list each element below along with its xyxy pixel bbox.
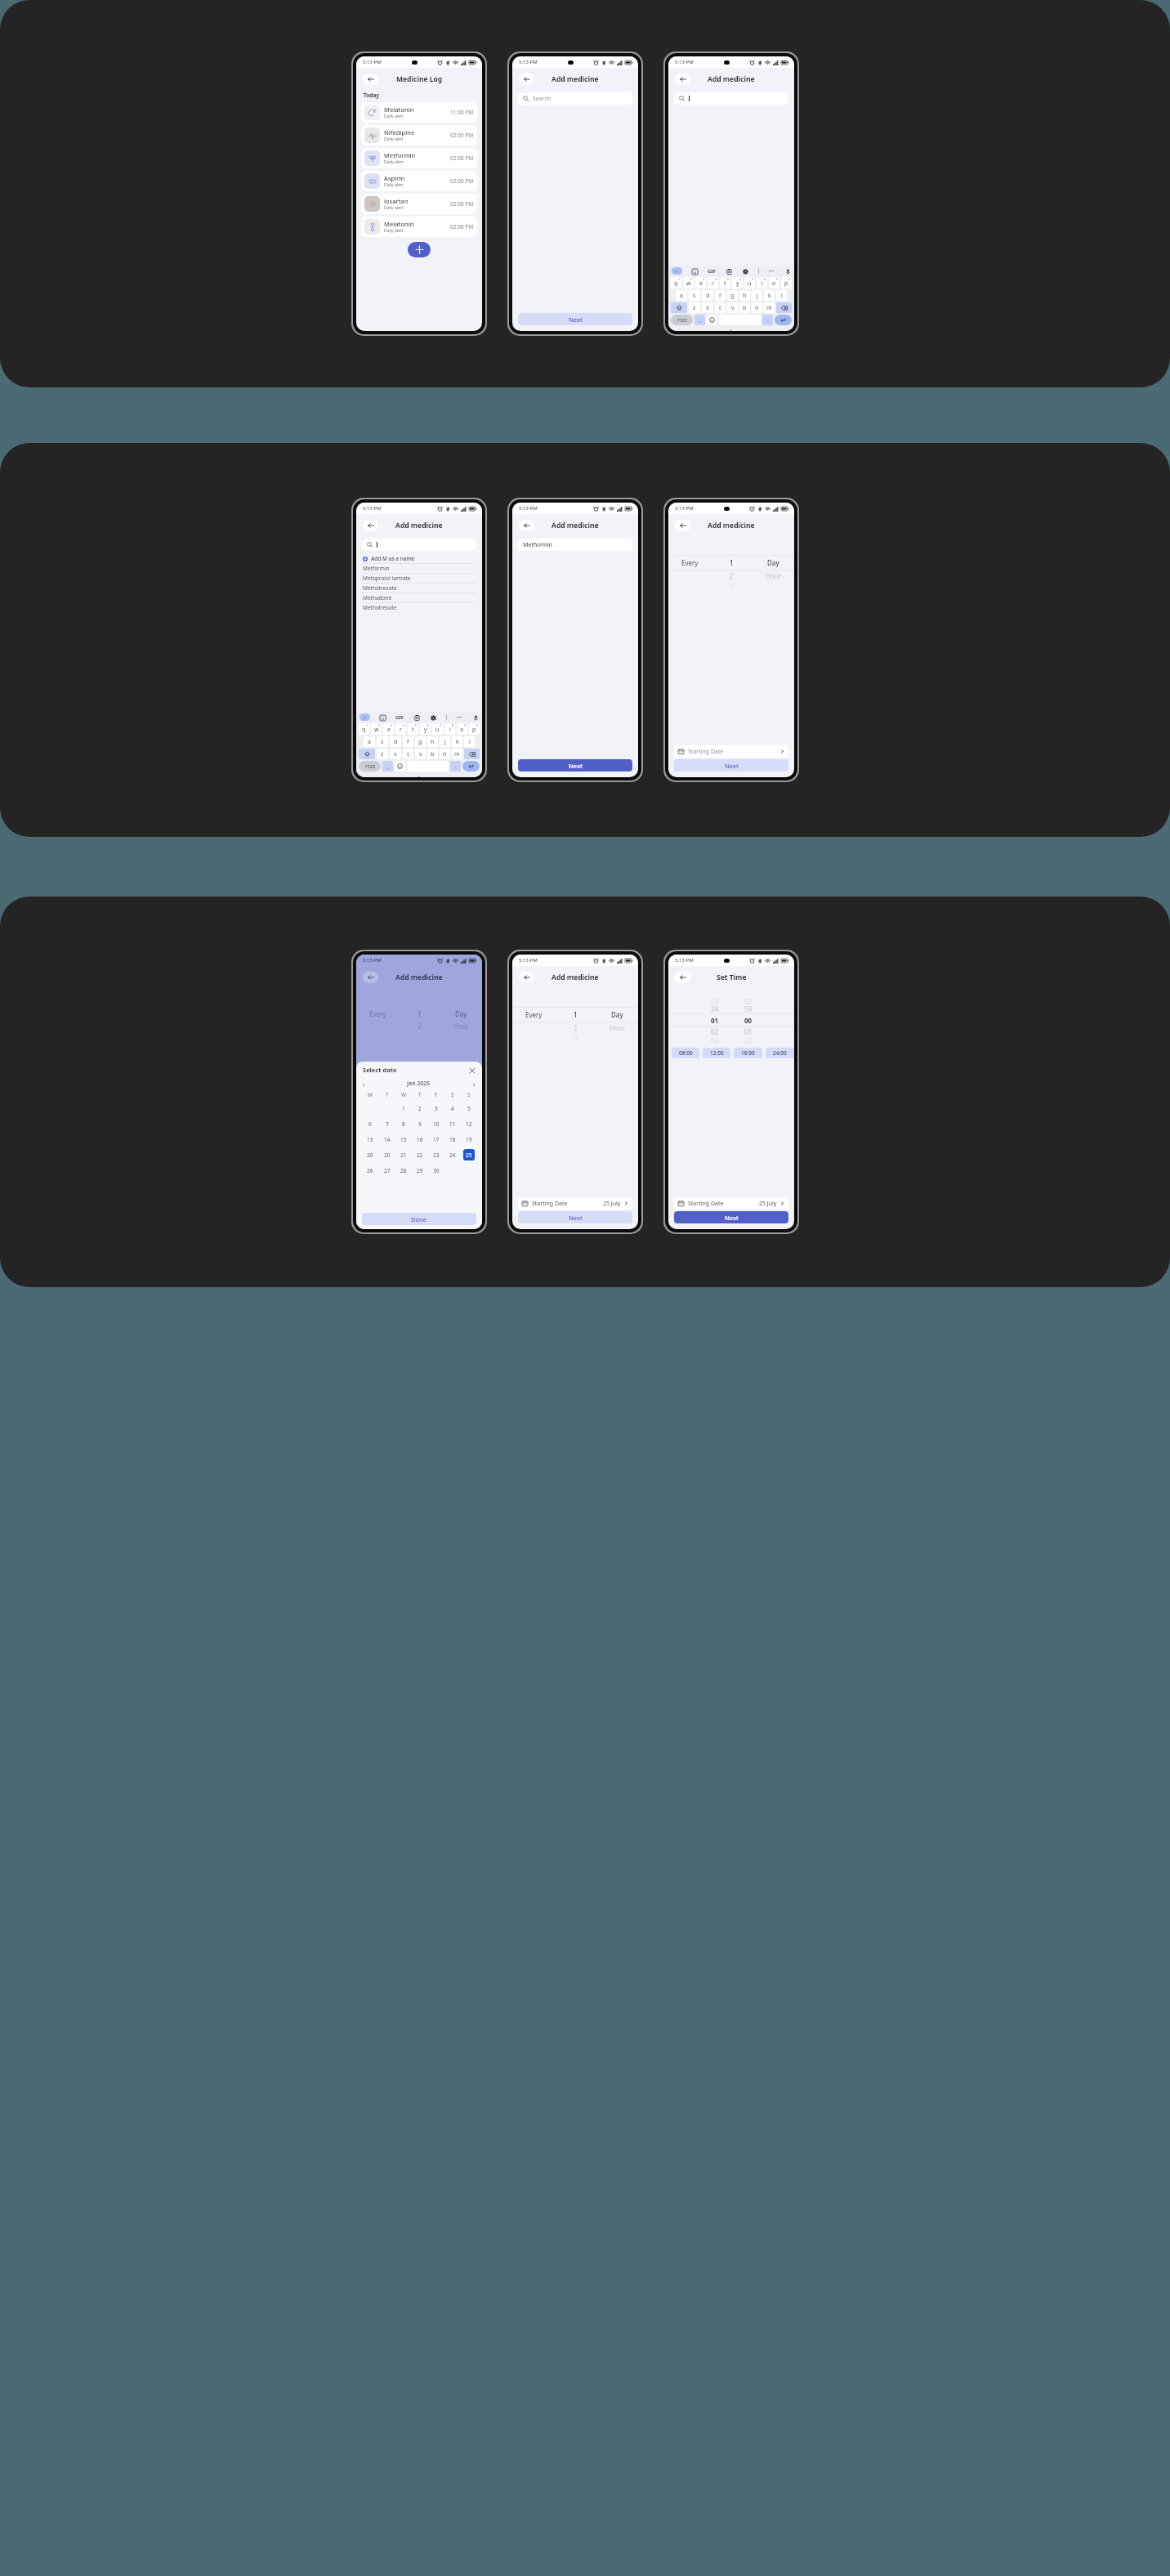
- button[interactable]: Melatonin: [361, 217, 477, 237]
- button[interactable]: 1: [398, 1102, 409, 1114]
- button[interactable]: Methadone: [356, 593, 482, 602]
- button[interactable]: •••: [769, 268, 775, 274]
- button[interactable]: Metformin: [356, 564, 482, 573]
- button[interactable]: 17: [431, 1134, 442, 1145]
- button[interactable]: 21: [398, 1149, 409, 1161]
- button[interactable]: [462, 761, 480, 771]
- button[interactable]: Search: [518, 92, 632, 105]
- button[interactable]: v: [415, 749, 426, 759]
- button[interactable]: 6: [732, 277, 743, 288]
- button[interactable]: 3: [695, 277, 706, 288]
- button[interactable]: 3: [431, 1102, 442, 1114]
- button[interactable]: 26: [364, 1165, 376, 1176]
- button[interactable]: c: [403, 749, 413, 759]
- button[interactable]: Previous: [672, 267, 682, 275]
- button[interactable]: g: [727, 290, 738, 301]
- button[interactable]: 28: [398, 1165, 409, 1176]
- button[interactable]: 27: [382, 1165, 393, 1176]
- button[interactable]: 9: [769, 277, 779, 288]
- button[interactable]: 11: [447, 1118, 458, 1129]
- button[interactable]: 22: [414, 1149, 426, 1161]
- button[interactable]: l: [464, 736, 475, 747]
- button[interactable]: Next: [518, 313, 632, 325]
- button[interactable]: 24: [447, 1149, 458, 1161]
- button[interactable]: [775, 315, 792, 325]
- button[interactable]: ›: [473, 1080, 476, 1089]
- button[interactable]: 8: [398, 1118, 409, 1129]
- button[interactable]: 20: [382, 1149, 393, 1161]
- button[interactable]: 8: [444, 723, 455, 735]
- button[interactable]: 15: [398, 1134, 409, 1145]
- button[interactable]: Metformin: [361, 148, 477, 168]
- button[interactable]: Next: [674, 759, 788, 771]
- button[interactable]: 6: [420, 723, 431, 735]
- button[interactable]: 13: [364, 1134, 376, 1145]
- button[interactable]: gear: [742, 268, 748, 275]
- button[interactable]: 8: [757, 277, 767, 288]
- button[interactable]: ,: [694, 315, 705, 325]
- button[interactable]: Back: [675, 972, 690, 983]
- button[interactable]: 7: [744, 277, 755, 288]
- button[interactable]: f: [403, 736, 413, 747]
- button[interactable]: Back: [519, 972, 534, 983]
- button[interactable]: Back: [675, 74, 690, 85]
- button[interactable]: 7: [382, 1118, 393, 1129]
- button[interactable]: clip: [726, 268, 732, 275]
- button[interactable]: z: [689, 302, 700, 313]
- button[interactable]: 2: [414, 1102, 426, 1114]
- button[interactable]: g: [415, 736, 426, 747]
- button[interactable]: ‹: [363, 1080, 365, 1089]
- button[interactable]: x: [390, 749, 401, 759]
- button[interactable]: 20: [364, 1149, 376, 1161]
- button[interactable]: GIF: [708, 268, 716, 275]
- button[interactable]: 0: [781, 277, 792, 288]
- button[interactable]: m: [452, 749, 462, 759]
- button[interactable]: Previous: [359, 713, 370, 721]
- button[interactable]: b: [427, 749, 438, 759]
- button[interactable]: 25: [463, 1149, 475, 1161]
- button[interactable]: clip: [413, 714, 420, 721]
- button[interactable]: j: [440, 736, 450, 747]
- button[interactable]: GIF: [395, 714, 404, 721]
- button[interactable]: z: [377, 749, 388, 759]
- button[interactable]: Metoprolol tartrate: [356, 574, 482, 583]
- button[interactable]: 3: [383, 723, 394, 735]
- button[interactable]: Add M as a name: [363, 554, 476, 563]
- button[interactable]: Nifedipine: [361, 125, 477, 145]
- button[interactable]: Next: [518, 1211, 632, 1223]
- button[interactable]: Done: [362, 1213, 476, 1225]
- button[interactable]: Back: [519, 520, 534, 531]
- button[interactable]: sticker: [691, 268, 698, 275]
- button[interactable]: s: [377, 736, 388, 747]
- button[interactable]: 1: [671, 277, 681, 288]
- button[interactable]: k: [764, 290, 775, 301]
- button[interactable]: Melatonin: [361, 102, 477, 123]
- button[interactable]: f: [715, 290, 726, 301]
- button[interactable]: 5: [720, 277, 730, 288]
- button[interactable]: x: [702, 302, 713, 313]
- button[interactable]: [674, 92, 788, 105]
- button[interactable]: 4: [447, 1102, 458, 1114]
- button[interactable]: Methotrexate: [356, 584, 482, 593]
- button[interactable]: Next: [674, 1211, 788, 1223]
- button[interactable]: 23: [431, 1149, 442, 1161]
- button[interactable]: Starting Date: [674, 1197, 788, 1210]
- button[interactable]: 29: [414, 1165, 426, 1176]
- button[interactable]: a: [676, 290, 687, 301]
- button[interactable]: Back: [363, 972, 378, 983]
- button[interactable]: Back: [519, 74, 534, 85]
- button[interactable]: 24:00: [766, 1048, 794, 1058]
- button[interactable]: v: [727, 302, 738, 313]
- button[interactable]: Starting Date: [518, 1197, 632, 1210]
- button[interactable]: 30: [431, 1165, 442, 1176]
- button[interactable]: b: [739, 302, 750, 313]
- button[interactable]: 08:00: [672, 1048, 699, 1058]
- button[interactable]: 19: [463, 1134, 475, 1145]
- button[interactable]: 10: [431, 1118, 442, 1129]
- button[interactable]: 4: [708, 277, 718, 288]
- button[interactable]: 4: [395, 723, 406, 735]
- button[interactable]: 14: [382, 1134, 393, 1145]
- button[interactable]: ?123: [359, 761, 381, 771]
- button[interactable]: 5: [463, 1102, 475, 1114]
